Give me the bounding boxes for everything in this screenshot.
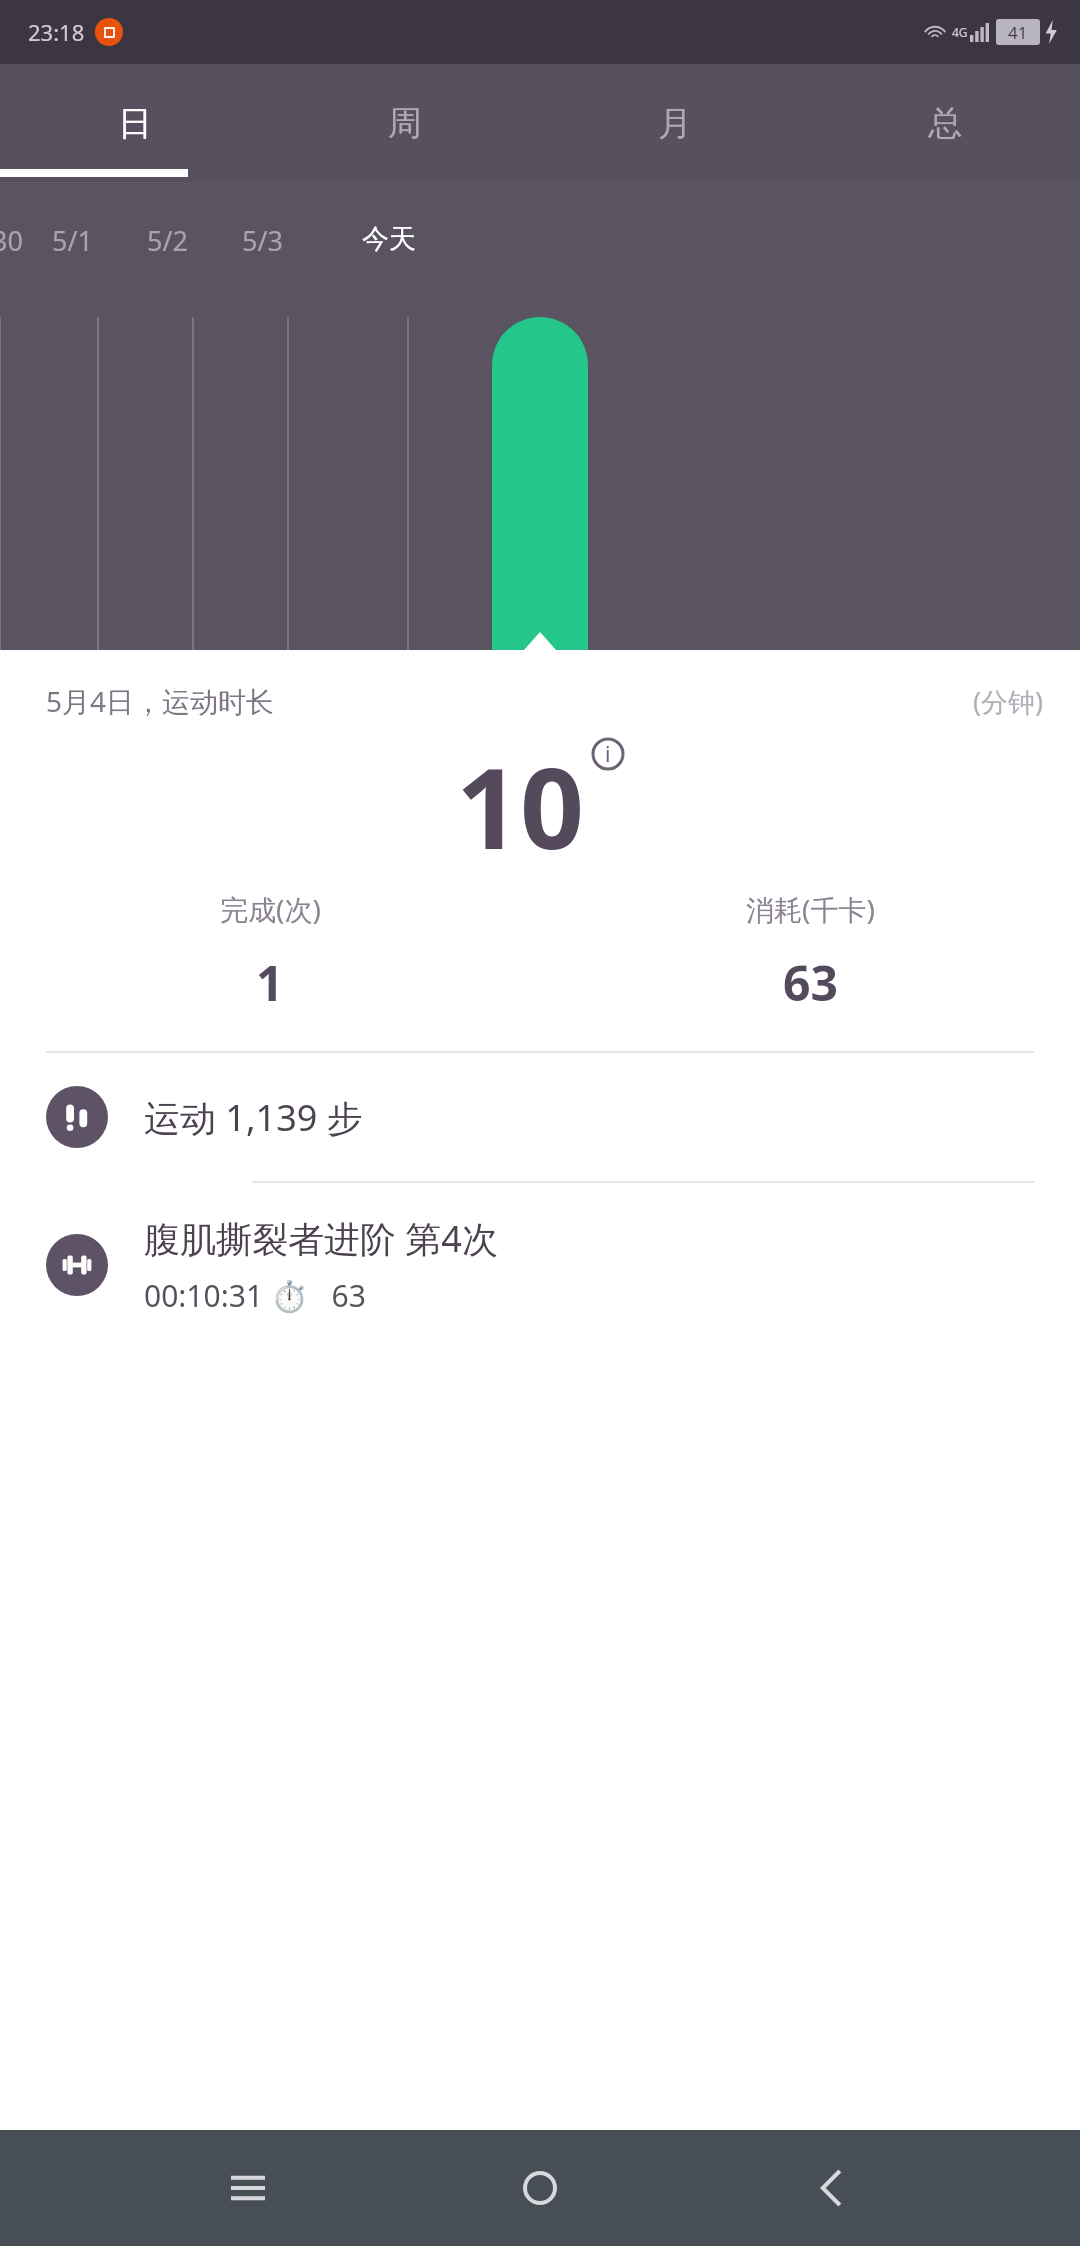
staticText: 日 <box>118 102 152 145</box>
staticText: 5/2 <box>147 222 188 259</box>
button[interactable]: 周 <box>270 64 540 182</box>
staticText: 运动 1,139 步 <box>144 1093 363 1142</box>
button[interactable]: 日 <box>0 64 270 182</box>
staticText: 00:10:31 ⏱ 63 <box>144 1275 374 1316</box>
button[interactable]: 月 <box>540 64 810 182</box>
button[interactable]: 运动 1,139 步 <box>0 1053 1080 1181</box>
staticText: 5月4日，运动时长 <box>46 682 275 720</box>
button[interactable]: 腹肌撕裂者进阶 第4次 <box>0 1183 1080 1347</box>
staticText: 今天 <box>362 222 416 256</box>
staticText: 4G <box>952 24 968 40</box>
staticText: 消耗(千卡) <box>746 890 875 928</box>
staticText: 5/1 <box>52 222 93 259</box>
button[interactable]: 总 <box>810 64 1080 182</box>
button[interactable]: 消耗(千卡) <box>540 890 1080 1015</box>
button[interactable]: Home <box>495 2143 585 2233</box>
staticText: 23:18 <box>28 17 85 47</box>
button[interactable]: 完成(次) <box>0 890 540 1015</box>
staticText: 41 <box>1008 21 1028 44</box>
staticText: 完成(次) <box>220 890 321 928</box>
staticText: 周 <box>388 102 422 145</box>
staticText: (分钟) <box>973 683 1044 720</box>
staticText: 月 <box>658 102 692 145</box>
staticText: 10 <box>456 729 585 882</box>
staticText: /30 <box>0 222 23 259</box>
button[interactable]: Back <box>788 2143 878 2233</box>
staticText: 总 <box>928 102 962 145</box>
staticText: i <box>605 740 611 769</box>
staticText: 腹肌撕裂者进阶 第4次 <box>144 1214 498 1263</box>
staticText: 5/3 <box>242 222 283 259</box>
staticText: 63 <box>783 950 838 1015</box>
button[interactable]: Menu <box>203 2143 293 2233</box>
button[interactable]: Info <box>591 737 625 771</box>
staticText: 1 <box>256 950 284 1015</box>
